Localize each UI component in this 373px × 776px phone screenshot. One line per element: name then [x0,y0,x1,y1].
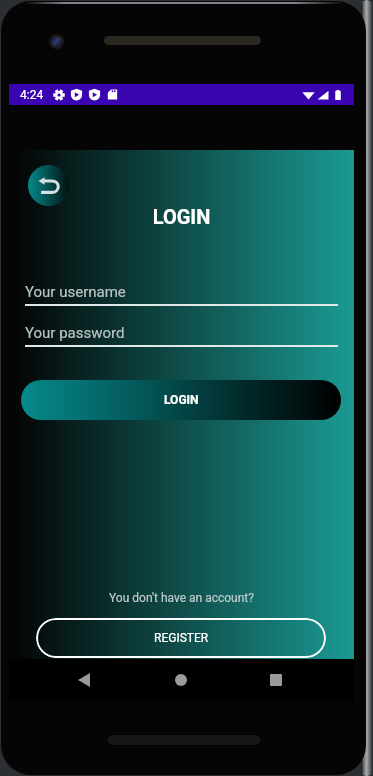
button[interactable]: Recent apps [239,659,313,701]
button[interactable]: REGISTER [36,618,326,658]
button[interactable]: Home [144,659,218,701]
staticText: LOGIN [9,205,354,228]
button[interactable]: Back [47,659,121,701]
button[interactable]: Back [28,165,69,206]
staticText: Your password [25,324,125,342]
button[interactable]: LOGIN [21,380,341,420]
staticText: 4:24 [20,88,44,102]
staticText: Your username [25,283,126,301]
staticText: LOGIN [164,393,199,407]
staticText: REGISTER [154,631,209,645]
staticText: You don't have an account? [9,591,354,605]
